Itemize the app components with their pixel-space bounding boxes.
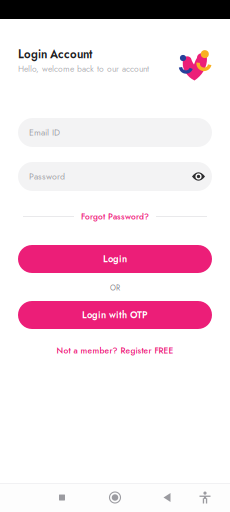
staticText: OR [110, 283, 120, 293]
staticText: Login with OTP [82, 308, 148, 322]
button[interactable]: Not a member? Register FREE [56, 345, 173, 356]
staticText: Forgot Password? [81, 210, 149, 223]
button[interactable]: Login [0, 245, 230, 273]
button[interactable]: Login with OTP [0, 301, 230, 329]
button[interactable]: Recents [48, 483, 76, 512]
staticText: Login [103, 252, 127, 266]
button[interactable]: Forgot Password? [81, 211, 149, 222]
staticText: Login Account [18, 46, 92, 62]
staticText: Email ID [29, 126, 60, 139]
button[interactable]: Back [153, 483, 181, 512]
button[interactable]: Show password [192, 170, 205, 183]
staticText: Password [29, 170, 65, 183]
staticText: Not a member? Register FREE [56, 344, 173, 357]
button[interactable]: Accessibility [191, 483, 219, 512]
staticText: Hello, welcome back to our account [18, 62, 149, 75]
button[interactable]: Home [101, 483, 129, 512]
